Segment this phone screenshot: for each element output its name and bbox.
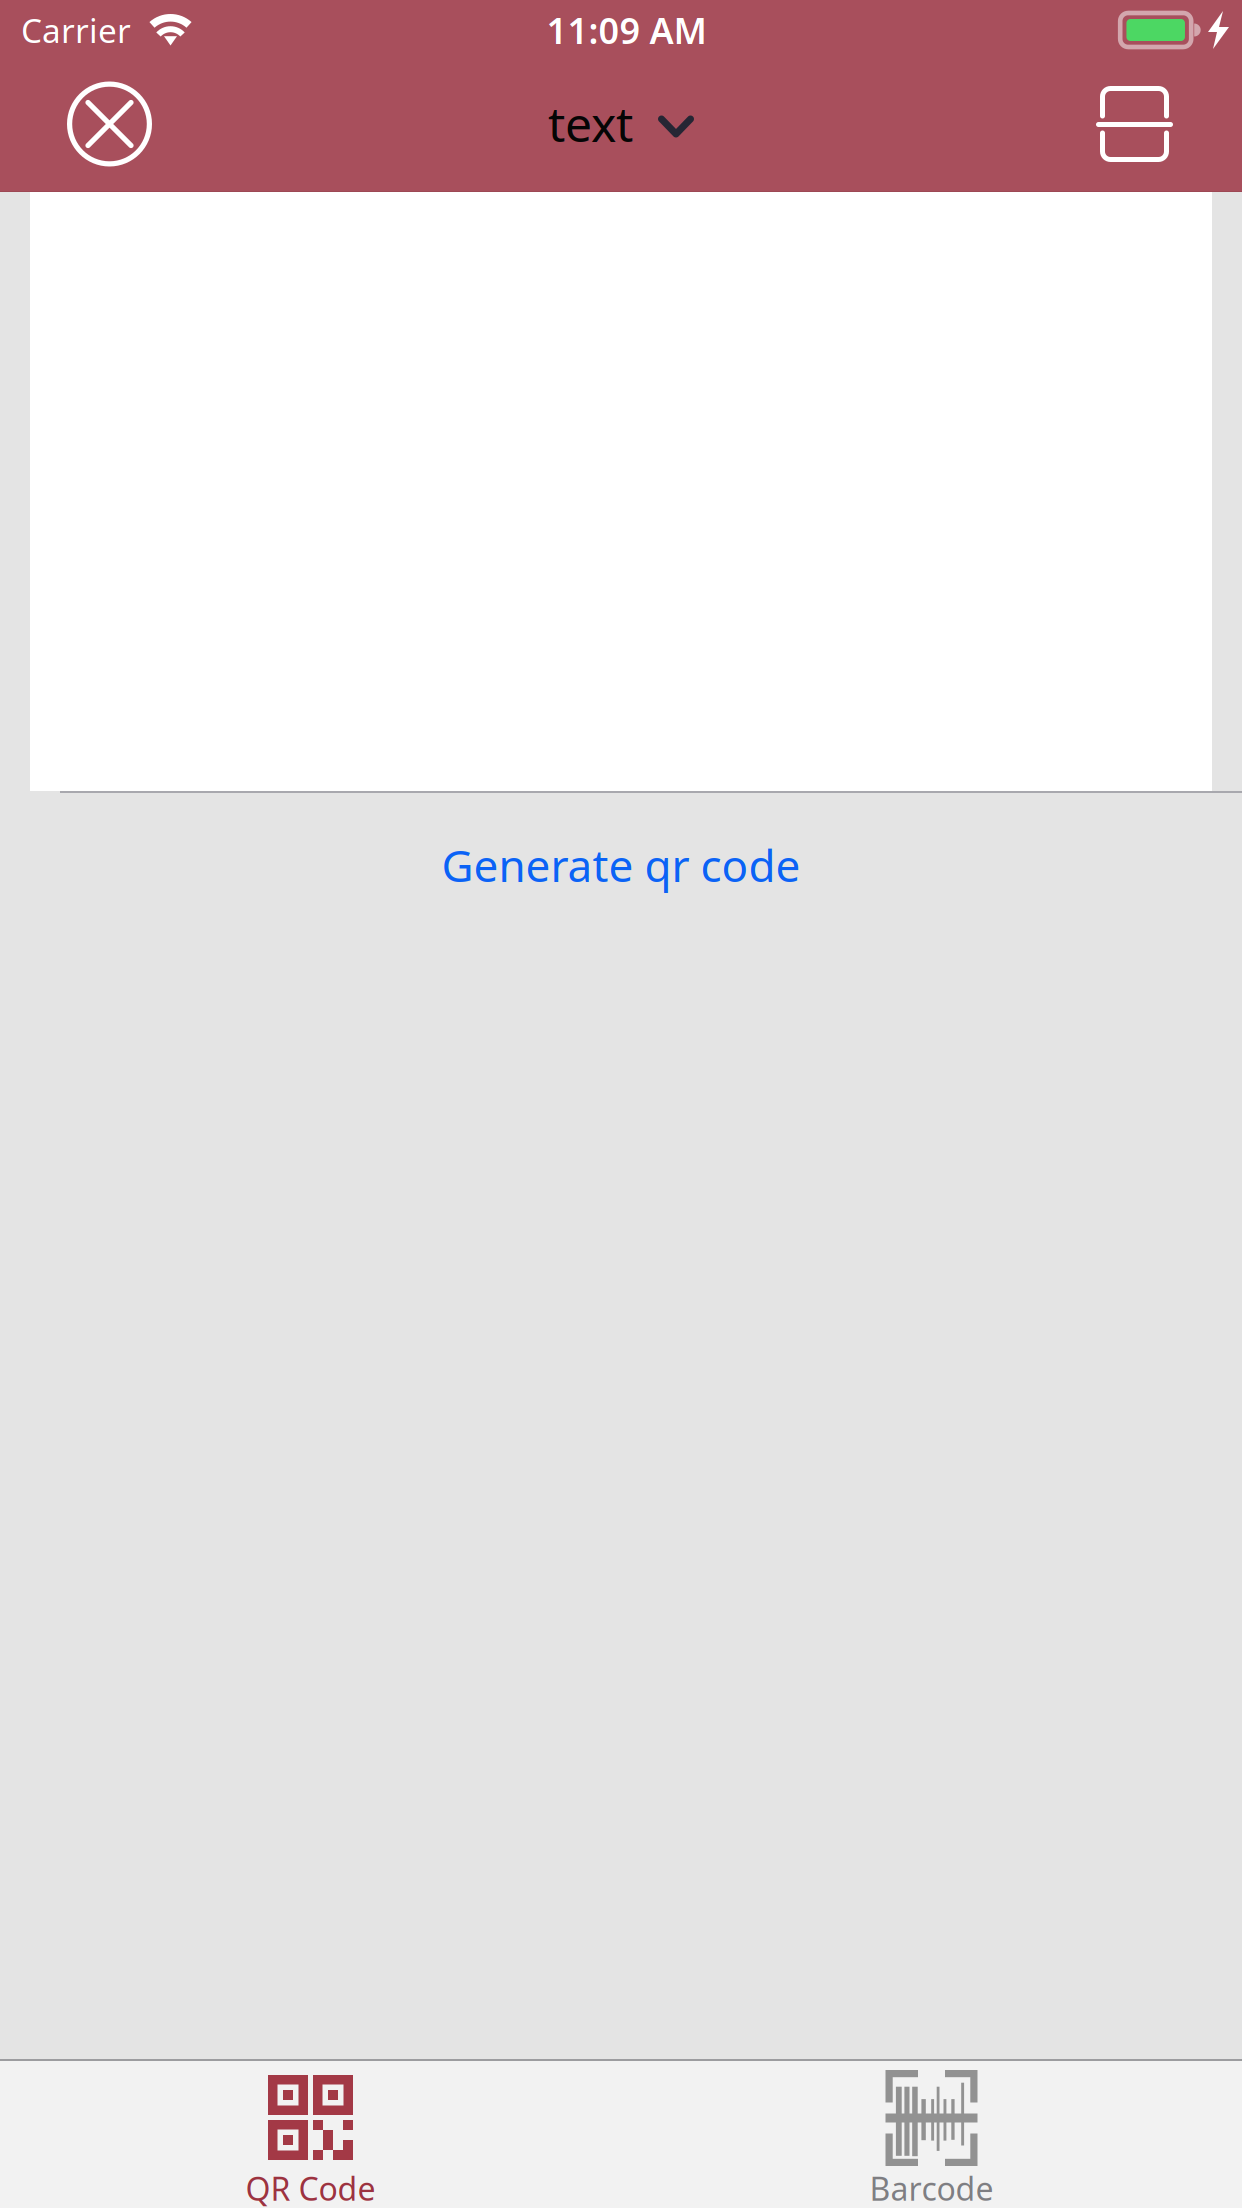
button[interactable]: QR Code — [0, 2061, 621, 2208]
staticText: text — [548, 92, 633, 155]
staticText: Carrier — [21, 8, 131, 52]
staticText: 11:09 AM — [546, 6, 706, 54]
staticText: QR Code — [245, 2167, 375, 2208]
button[interactable]: text — [534, 60, 708, 191]
staticText: Barcode — [869, 2167, 993, 2208]
staticText: Generate qr code — [441, 836, 800, 894]
button[interactable]: Barcode — [621, 2061, 1242, 2208]
button[interactable]: Scan — [1059, 60, 1242, 191]
button[interactable]: Close — [0, 60, 192, 191]
button[interactable]: Generate qr code — [0, 793, 1242, 942]
